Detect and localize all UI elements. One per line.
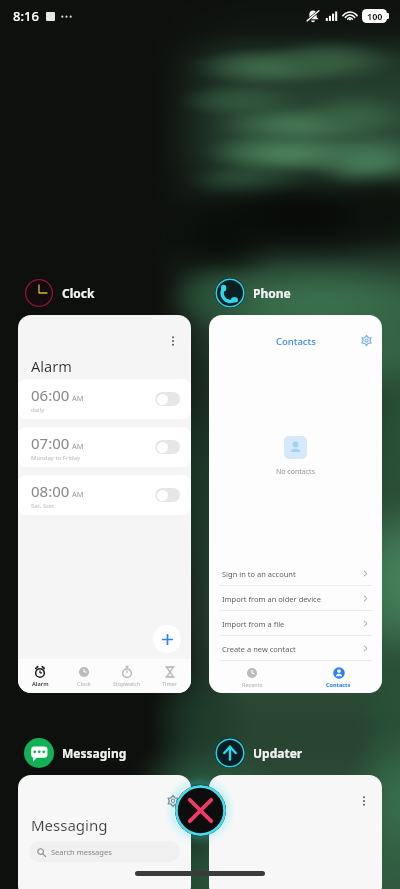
button[interactable]: Search messages <box>29 841 180 862</box>
staticText: Contacts <box>276 335 316 348</box>
staticText: Clock <box>62 285 95 301</box>
staticText: Messaging <box>31 815 108 835</box>
staticText: Phone <box>253 285 291 301</box>
button[interactable]: Add alarm <box>153 625 181 653</box>
button[interactable]: Settings <box>357 331 375 349</box>
button[interactable]: 06:00 <box>18 379 191 419</box>
staticText: Messaging <box>62 745 127 761</box>
staticText: AM <box>72 441 84 451</box>
staticText: Sat, Sun <box>31 502 54 510</box>
button[interactable]: Sign in to an account <box>209 561 382 586</box>
staticText: Stopwatch <box>113 680 141 687</box>
staticText: Create a new contact <box>222 644 296 654</box>
button[interactable]: Phone <box>215 277 382 309</box>
staticText: Import from a file <box>222 619 285 629</box>
staticText: daily <box>31 406 45 414</box>
button[interactable]: More options <box>163 331 183 351</box>
button[interactable]: Toggle alarm 08:00 <box>155 488 180 502</box>
button[interactable]: More options <box>354 791 374 811</box>
button[interactable]: Import from a file <box>209 611 382 636</box>
button[interactable]: 07:00 <box>18 427 191 467</box>
staticText: Clock <box>77 680 91 687</box>
button[interactable]: Updater <box>215 737 382 769</box>
button[interactable]: Stopwatch <box>105 659 148 693</box>
button[interactable]: Toggle alarm 07:00 <box>155 440 180 454</box>
button[interactable]: Import from an older device <box>209 586 382 611</box>
staticText: Timer <box>162 680 177 687</box>
button[interactable]: Messaging <box>24 737 191 769</box>
staticText: Monday to Friday <box>31 454 81 462</box>
button[interactable]: Clock <box>62 659 105 693</box>
staticText: Search messages <box>51 847 112 857</box>
staticText: 100 <box>367 10 383 22</box>
button[interactable]: 08:00 <box>18 475 191 515</box>
button[interactable]: Create a new contact <box>209 636 382 661</box>
button[interactable]: Timer <box>148 659 191 693</box>
staticText: Updater <box>253 745 303 761</box>
button[interactable]: Clock <box>24 277 191 309</box>
staticText: Sign in to an account <box>222 569 296 579</box>
button[interactable]: Alarm <box>18 659 62 693</box>
staticText: Import from an older device <box>222 594 321 604</box>
button[interactable]: Recents <box>209 662 295 693</box>
staticText: Recents <box>242 681 263 688</box>
button[interactable]: Contacts <box>295 662 382 693</box>
staticText: Alarm <box>32 680 49 687</box>
staticText: AM <box>72 393 84 403</box>
staticText: 07:00 <box>31 433 70 453</box>
staticText: 08:00 <box>31 481 70 501</box>
button[interactable]: Messaging settings <box>163 791 183 811</box>
staticText: 06:00 <box>31 385 70 405</box>
staticText: Contacts <box>326 681 351 688</box>
button[interactable]: Close all <box>175 785 226 836</box>
staticText: Alarm <box>31 356 72 376</box>
staticText: No contacts <box>276 467 315 477</box>
staticText: AM <box>72 489 84 499</box>
button[interactable]: Toggle alarm 06:00 <box>155 392 180 406</box>
staticText: 8:16 <box>13 7 39 25</box>
